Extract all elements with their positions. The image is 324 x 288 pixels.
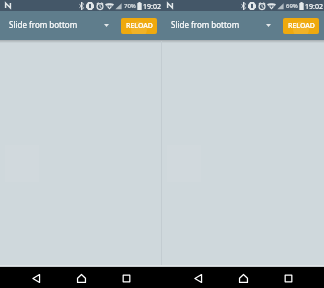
button[interactable]: RELOAD xyxy=(121,18,157,34)
staticText: 70% xyxy=(124,2,136,10)
staticText: 69% xyxy=(286,2,298,10)
staticText: 19:02 xyxy=(305,2,323,12)
staticText: Slide from bottom xyxy=(9,19,78,30)
button[interactable]: Slide from bottom xyxy=(166,15,276,36)
button[interactable]: Recents xyxy=(279,268,297,288)
staticText: RELOAD xyxy=(126,21,153,31)
button[interactable]: RELOAD xyxy=(283,18,319,34)
button[interactable]: Recents xyxy=(117,268,135,288)
button[interactable]: Slide from bottom xyxy=(4,15,114,36)
button[interactable]: Home xyxy=(234,268,252,288)
staticText: RELOAD xyxy=(288,21,315,31)
button[interactable]: Home xyxy=(72,268,90,288)
button[interactable]: Back xyxy=(189,268,207,288)
button[interactable]: Back xyxy=(27,268,45,288)
staticText: Slide from bottom xyxy=(171,19,240,30)
staticText: 19:02 xyxy=(143,2,161,12)
